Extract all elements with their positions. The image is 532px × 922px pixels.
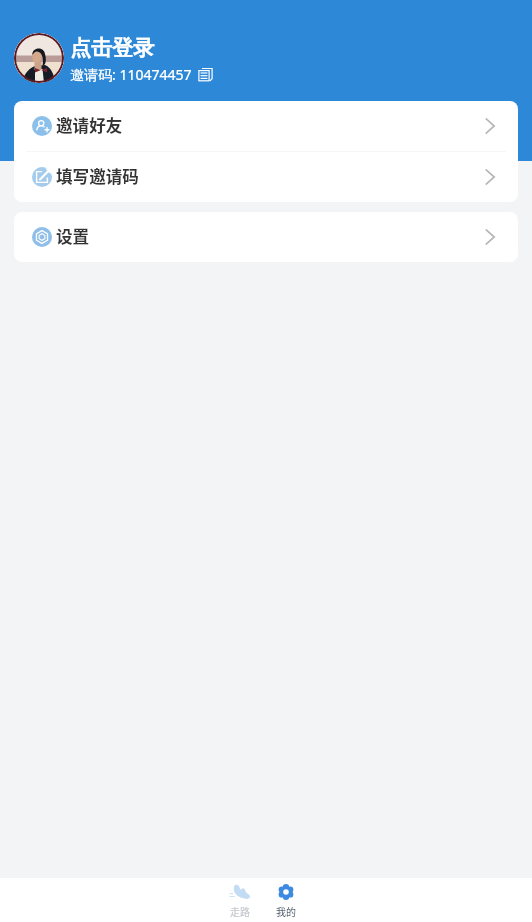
staticText: 我的 xyxy=(276,904,296,918)
staticText: 设置 xyxy=(56,224,90,248)
button[interactable]: 头像 xyxy=(14,33,64,83)
button[interactable]: 设置 xyxy=(14,212,518,262)
staticText: 点击登录 xyxy=(70,35,154,61)
button[interactable]: 复制邀请码 xyxy=(198,67,213,82)
button[interactable]: 填写邀请码 xyxy=(14,152,518,202)
button[interactable]: 走路 xyxy=(217,878,263,922)
button[interactable]: 头像 xyxy=(14,33,213,84)
button[interactable]: 邀请好友 xyxy=(14,101,518,151)
button[interactable]: 我的 xyxy=(263,878,309,922)
staticText: 邀请码: 110474457 xyxy=(70,65,192,84)
staticText: 填写邀请码 xyxy=(56,164,139,188)
staticText: 邀请好友 xyxy=(56,113,123,137)
staticText: 走路 xyxy=(230,904,250,918)
